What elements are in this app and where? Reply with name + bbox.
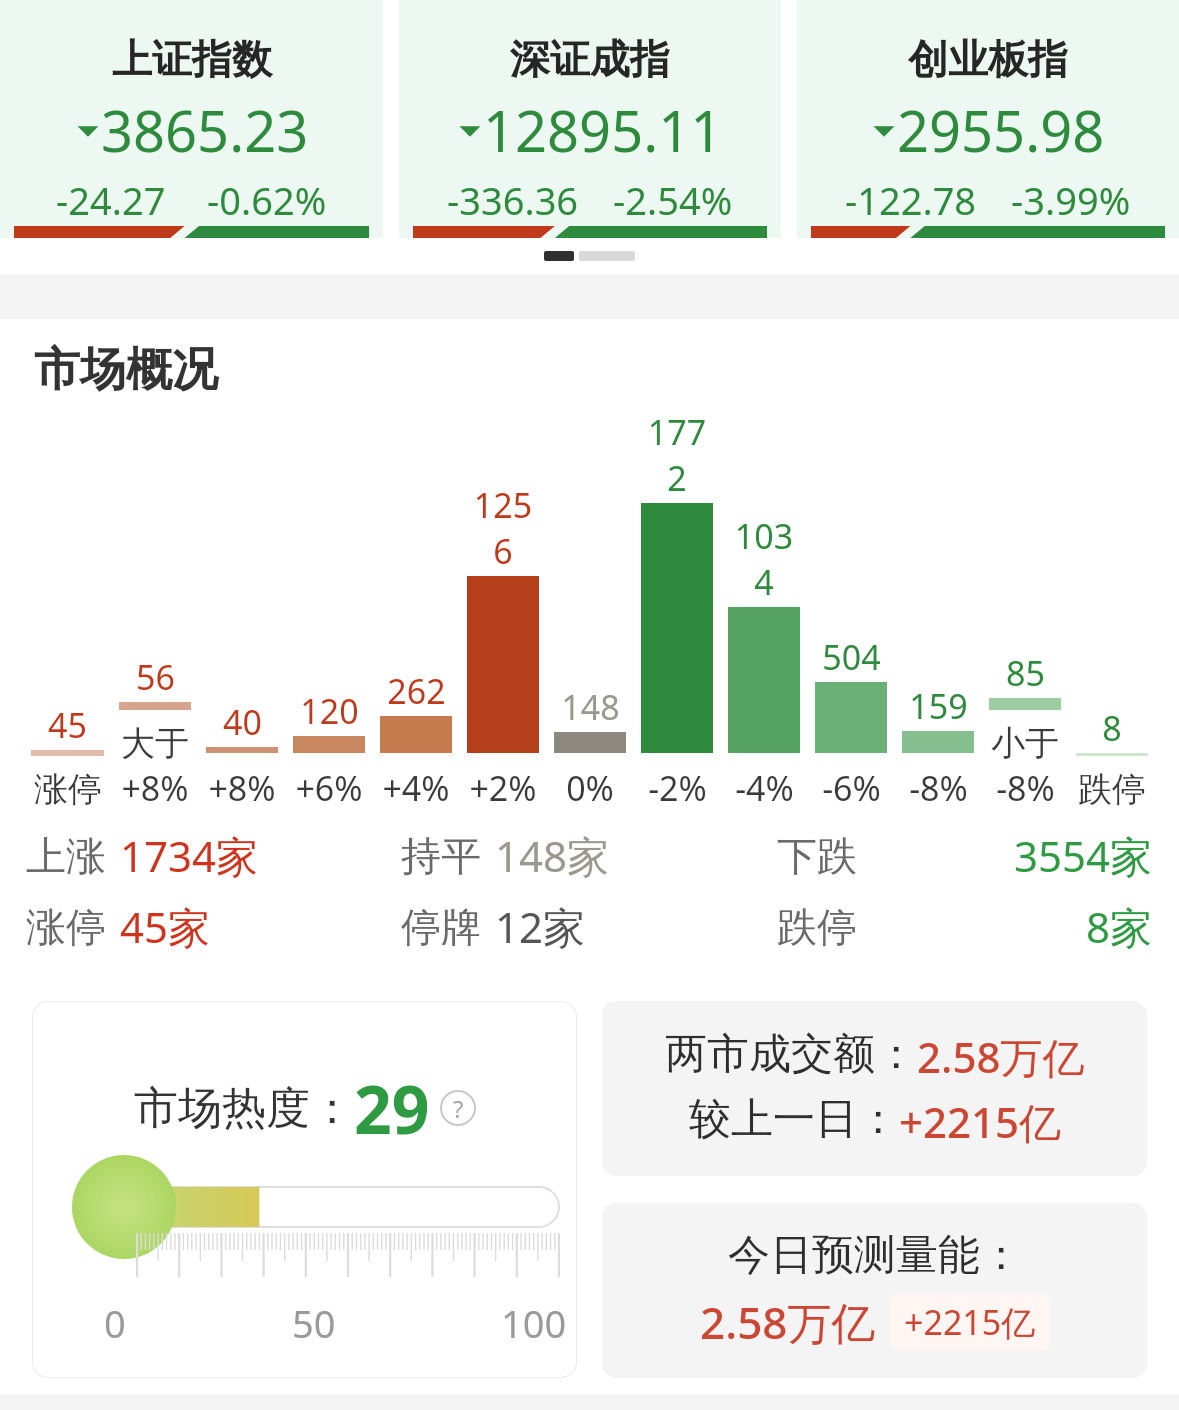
- staticText: 12家: [495, 898, 586, 955]
- staticText: 148: [561, 684, 620, 730]
- staticText: 较上一日：: [689, 1093, 899, 1146]
- staticText: 涨停: [34, 768, 102, 811]
- staticText: -8%: [996, 765, 1055, 811]
- staticText: 8: [1102, 705, 1122, 751]
- staticText: 1256: [467, 482, 539, 574]
- staticText: 1034: [728, 513, 800, 605]
- staticText: -6%: [822, 765, 881, 811]
- staticText: 8家: [1086, 898, 1153, 955]
- staticText: 深证成指: [510, 34, 670, 84]
- staticText: +4%: [382, 765, 450, 811]
- staticText: 小于: [991, 722, 1059, 765]
- staticText: 2955.98: [897, 92, 1105, 168]
- staticText: -0.62%: [207, 174, 327, 226]
- staticText: 今日预测量能：: [728, 1229, 1022, 1282]
- staticText: 50: [292, 1297, 336, 1349]
- staticText: 85: [1006, 650, 1045, 696]
- staticText: 12895.11: [483, 92, 723, 168]
- staticText: 0: [104, 1297, 126, 1349]
- staticText: 100: [501, 1297, 567, 1349]
- staticText: 148家: [495, 827, 610, 884]
- button[interactable]: 热度说明: [440, 1090, 476, 1126]
- staticText: 120: [300, 688, 359, 734]
- staticText: 创业板指: [908, 34, 1068, 84]
- staticText: 1734家: [120, 827, 259, 884]
- staticText: -8%: [909, 765, 968, 811]
- staticText: 下跌: [777, 831, 857, 881]
- button[interactable]: 今日预测量能：: [602, 1203, 1147, 1378]
- staticText: 0%: [566, 765, 614, 811]
- staticText: 停牌: [401, 902, 481, 952]
- staticText: 两市成交额：: [665, 1028, 917, 1081]
- staticText: +2%: [469, 765, 537, 811]
- staticText: -2%: [648, 765, 707, 811]
- staticText: 跌停: [777, 902, 857, 952]
- staticText: 262: [387, 668, 446, 714]
- staticText: 2.58万亿: [700, 1292, 876, 1352]
- button[interactable]: 深证成指: [399, 0, 781, 238]
- staticText: 上涨: [26, 831, 106, 881]
- staticText: 3865.23: [101, 92, 309, 168]
- staticText: -2.54%: [613, 174, 733, 226]
- staticText: 市场热度：: [134, 1081, 354, 1136]
- staticText: 持平: [401, 831, 481, 881]
- staticText: 504: [822, 634, 881, 680]
- staticText: -122.78: [845, 174, 977, 226]
- staticText: +8%: [208, 765, 276, 811]
- staticText: +2215亿: [904, 1299, 1036, 1345]
- staticText: +6%: [295, 765, 363, 811]
- staticText: -4%: [735, 765, 794, 811]
- staticText: 1772: [641, 409, 713, 501]
- staticText: +8%: [121, 765, 189, 811]
- staticText: +2215亿: [899, 1093, 1062, 1150]
- staticText: 56: [136, 654, 175, 700]
- button[interactable]: 创业板指: [797, 0, 1179, 238]
- staticText: 3554家: [1014, 827, 1153, 884]
- staticText: 上证指数: [112, 34, 272, 84]
- staticText: -24.27: [56, 174, 166, 226]
- button[interactable]: 上证指数: [0, 0, 383, 238]
- button[interactable]: 两市成交额：: [602, 1001, 1147, 1176]
- staticText: 40: [223, 699, 262, 745]
- staticText: 涨停: [26, 902, 106, 952]
- staticText: 2.58万亿: [917, 1028, 1085, 1085]
- staticText: 159: [909, 683, 968, 729]
- staticText: 29: [354, 1063, 430, 1153]
- staticText: 大于: [121, 722, 189, 765]
- staticText: ?: [453, 1092, 464, 1125]
- staticText: 45: [48, 702, 87, 748]
- staticText: 45家: [120, 898, 211, 955]
- staticText: 市场概况: [34, 341, 218, 399]
- staticText: -3.99%: [1011, 174, 1131, 226]
- button[interactable]: 市场热度：: [32, 1001, 577, 1378]
- staticText: 跌停: [1078, 768, 1146, 811]
- staticText: -336.36: [447, 174, 579, 226]
